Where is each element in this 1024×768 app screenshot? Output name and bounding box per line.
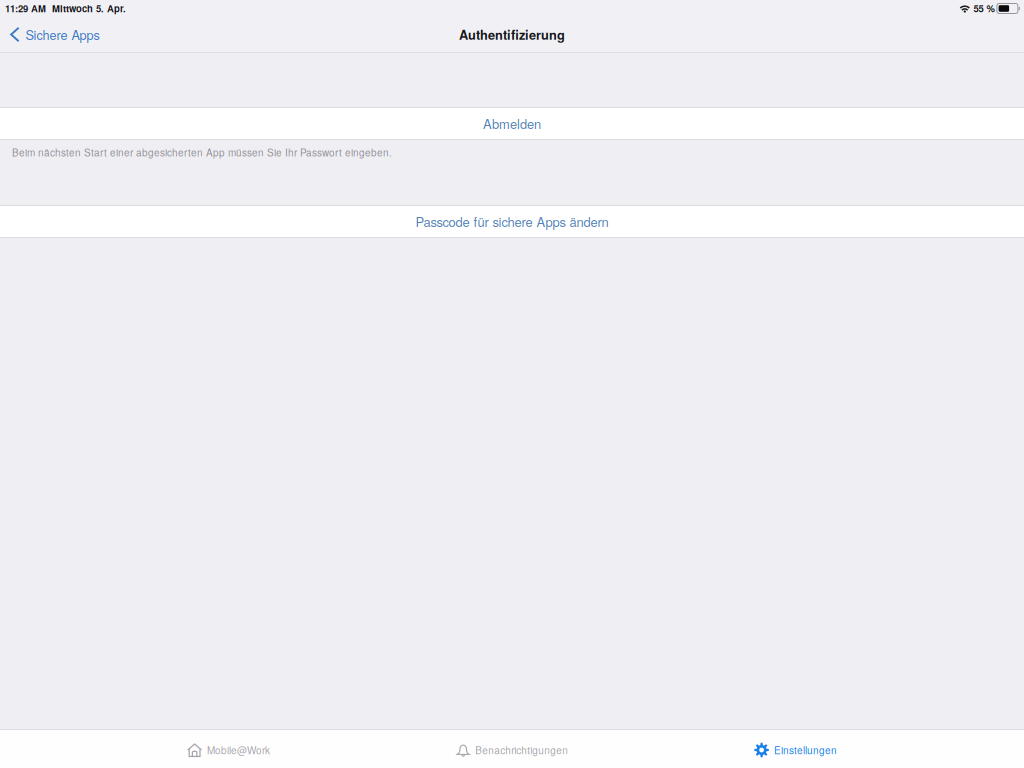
button[interactable]: Abmelden	[0, 108, 1024, 139]
staticText: 55 %	[973, 2, 994, 15]
button[interactable]: Sichere Apps	[0, 17, 111, 52]
staticText: Passcode für sichere Apps ändern	[415, 212, 608, 231]
button[interactable]: Einstellungen	[744, 730, 847, 768]
button[interactable]: Benachrichtigungen	[446, 730, 578, 768]
staticText: Authentifizierung	[459, 25, 565, 44]
staticText: Mobile@Work	[207, 743, 270, 757]
staticText: Mittwoch 5. Apr.	[52, 2, 126, 15]
button[interactable]: Mobile@Work	[177, 730, 280, 768]
staticText: Einstellungen	[774, 743, 837, 757]
staticText: Beim nächsten Start einer abgesicherten …	[12, 145, 392, 159]
button[interactable]: Passcode für sichere Apps ändern	[0, 206, 1024, 237]
staticText: Abmelden	[483, 114, 541, 133]
staticText: Benachrichtigungen	[475, 743, 568, 757]
staticText: 11:29 AM	[5, 2, 46, 15]
staticText: Sichere Apps	[25, 25, 99, 43]
